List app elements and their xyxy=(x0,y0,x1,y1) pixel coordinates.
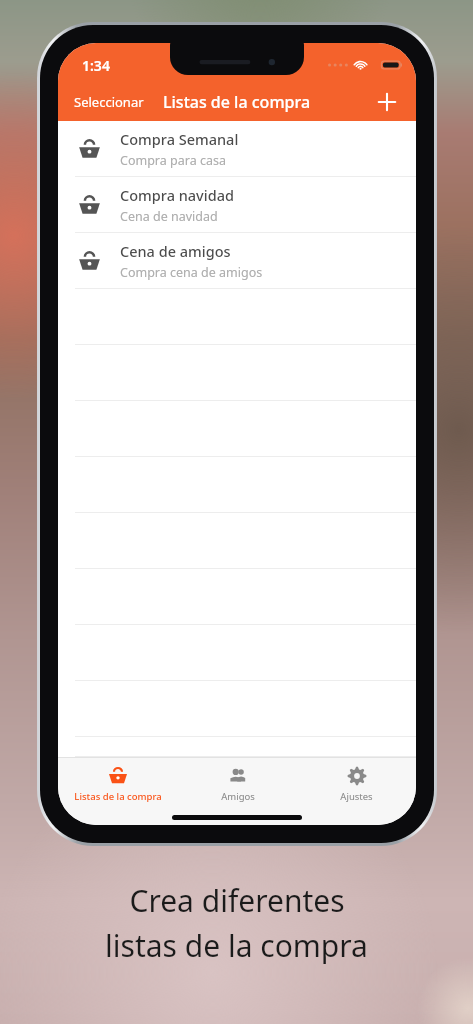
staticText: Crea diferentes xyxy=(129,880,345,921)
staticText: Compra Semanal xyxy=(120,129,239,149)
staticText: Compra para casa xyxy=(120,152,226,169)
staticText: Amigos xyxy=(221,790,255,803)
button[interactable]: Compra navidad xyxy=(58,177,416,233)
staticText: Compra cena de amigos xyxy=(120,264,263,281)
staticText: Cena de navidad xyxy=(120,208,218,225)
button[interactable]: Seleccionar xyxy=(58,87,152,117)
staticText: Listas de la compra xyxy=(74,790,162,803)
staticText: Seleccionar xyxy=(74,93,144,111)
button[interactable]: Listas de la compra xyxy=(58,762,178,807)
staticText: 1:34 xyxy=(82,56,110,75)
button[interactable]: Add list xyxy=(370,85,416,119)
staticText: Listas de la compra xyxy=(163,91,311,113)
button[interactable]: Amigos xyxy=(178,762,297,807)
button[interactable]: Ajustes xyxy=(297,762,416,807)
button[interactable]: Compra Semanal xyxy=(58,121,416,177)
button[interactable]: Cena de amigos xyxy=(58,233,416,289)
staticText: Ajustes xyxy=(340,790,373,803)
staticText: listas de la compra xyxy=(105,925,368,966)
staticText: Cena de amigos xyxy=(120,241,231,261)
staticText: Compra navidad xyxy=(120,185,234,205)
